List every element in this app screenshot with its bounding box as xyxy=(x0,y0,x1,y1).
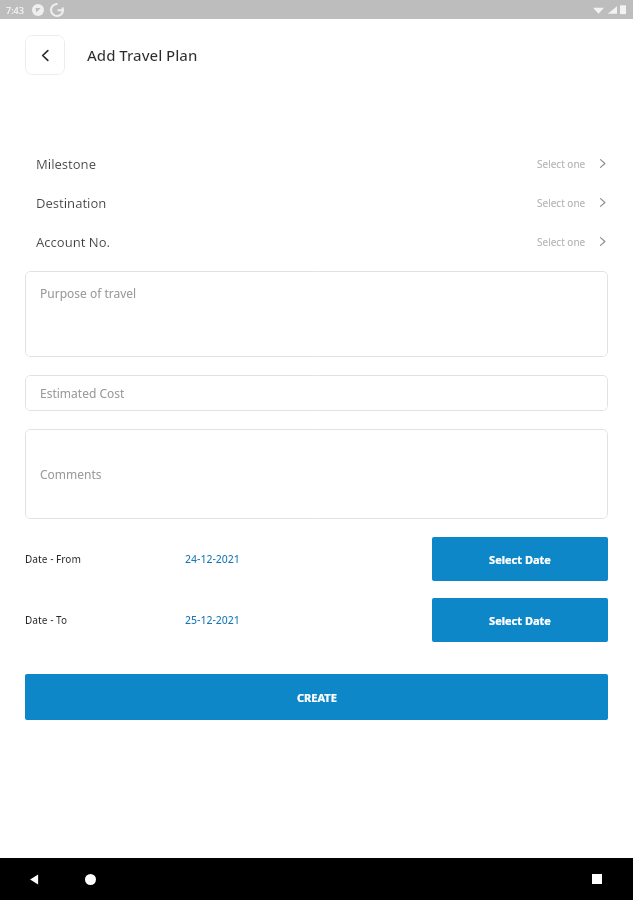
button[interactable]: Account No. xyxy=(0,222,633,261)
button[interactable]: Purpose of travel xyxy=(25,271,608,357)
staticText: Select one xyxy=(537,157,586,171)
button[interactable]: Back xyxy=(20,865,48,893)
button[interactable]: Back xyxy=(25,35,65,75)
staticText: Account No. xyxy=(36,233,111,251)
staticText: Date - To xyxy=(25,613,185,627)
button[interactable]: Home xyxy=(76,865,104,893)
button[interactable]: Estimated Cost xyxy=(25,375,608,411)
button[interactable]: CREATE xyxy=(25,674,608,720)
staticText: 24-12-2021 xyxy=(185,552,365,566)
staticText: Select one xyxy=(537,235,586,249)
staticText: Add Travel Plan xyxy=(87,45,198,65)
button[interactable]: Select Date xyxy=(432,537,608,581)
staticText: Milestone xyxy=(36,155,96,173)
staticText: Purpose of travel xyxy=(40,285,137,301)
button[interactable]: Milestone xyxy=(0,144,633,183)
staticText: Select Date xyxy=(489,613,551,628)
staticText: Select Date xyxy=(489,552,551,567)
button[interactable]: Select Date xyxy=(432,598,608,642)
button[interactable]: Recent apps xyxy=(583,865,611,893)
staticText: Date - From xyxy=(25,552,185,566)
staticText: Estimated Cost xyxy=(40,385,125,401)
staticText: Destination xyxy=(36,194,107,212)
staticText: 7:43 xyxy=(6,4,24,16)
button[interactable]: Comments xyxy=(25,429,608,519)
staticText: Comments xyxy=(40,466,102,482)
button[interactable]: Destination xyxy=(0,183,633,222)
staticText: CREATE xyxy=(297,690,337,705)
staticText: Select one xyxy=(537,196,586,210)
staticText: 25-12-2021 xyxy=(185,613,365,627)
